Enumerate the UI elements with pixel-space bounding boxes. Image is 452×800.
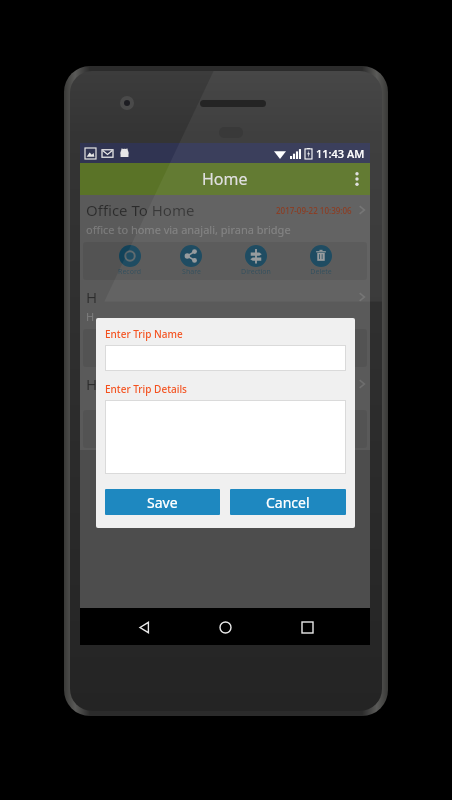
button[interactable] [105, 400, 346, 474]
button[interactable]: Record [114, 332, 145, 364]
staticText: 2017-09-22 10:39:06 [276, 205, 352, 216]
staticText: 11:43 AM [316, 146, 365, 161]
button[interactable]: More options [344, 163, 370, 195]
staticText: Cancel [266, 493, 310, 512]
button[interactable] [105, 345, 346, 371]
staticText: Record [118, 267, 141, 277]
button[interactable]: Direction [237, 332, 275, 364]
staticText: H [86, 374, 352, 394]
button[interactable]: H [80, 369, 370, 450]
staticText: office to home via anajali, pirana bridg… [86, 222, 291, 237]
staticText: Home [202, 168, 248, 190]
button[interactable]: Office To Home [80, 195, 370, 282]
button[interactable]: H [80, 282, 370, 369]
staticText: Save [147, 493, 178, 512]
button[interactable]: Back [126, 609, 162, 645]
button[interactable]: Direction [237, 245, 275, 277]
staticText: Share [182, 267, 201, 277]
button[interactable]: Recent apps [289, 609, 325, 645]
button[interactable]: Home [207, 609, 243, 645]
button[interactable]: Share [176, 245, 206, 277]
button[interactable]: Share [176, 332, 206, 364]
button[interactable]: Record [114, 245, 145, 277]
staticText: Enter Trip Details [105, 382, 187, 396]
staticText: Delete [310, 267, 332, 277]
staticText: Enter Trip Name [105, 327, 183, 341]
button[interactable]: Cancel [230, 489, 346, 515]
staticText: Office To Home [86, 200, 276, 220]
button[interactable]: Save [105, 489, 220, 515]
staticText: Direction [241, 267, 271, 277]
staticText: H [86, 287, 352, 307]
button[interactable]: Delete [306, 245, 336, 277]
staticText: H [86, 309, 95, 324]
button[interactable]: Delete [306, 332, 336, 364]
